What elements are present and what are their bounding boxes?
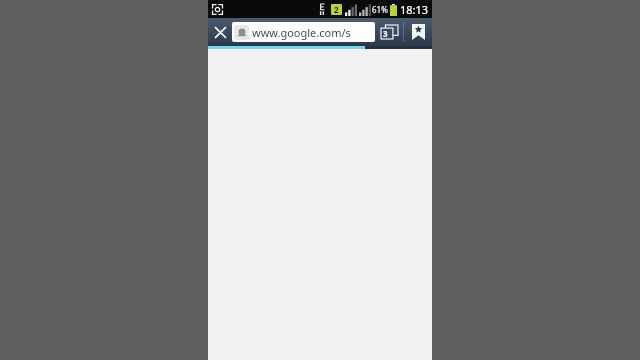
staticText: 2 [334, 4, 339, 15]
staticText: 3 [383, 28, 388, 39]
button[interactable]: Stop loading [208, 18, 232, 46]
staticText: www.google.com/s [252, 25, 351, 40]
staticText: 61% [372, 4, 388, 15]
button[interactable]: www.google.com/s [232, 22, 375, 42]
staticText: 18:13 [400, 2, 429, 17]
button[interactable]: Tabs, 3 open [375, 18, 403, 46]
button[interactable]: Bookmarks [404, 18, 432, 46]
